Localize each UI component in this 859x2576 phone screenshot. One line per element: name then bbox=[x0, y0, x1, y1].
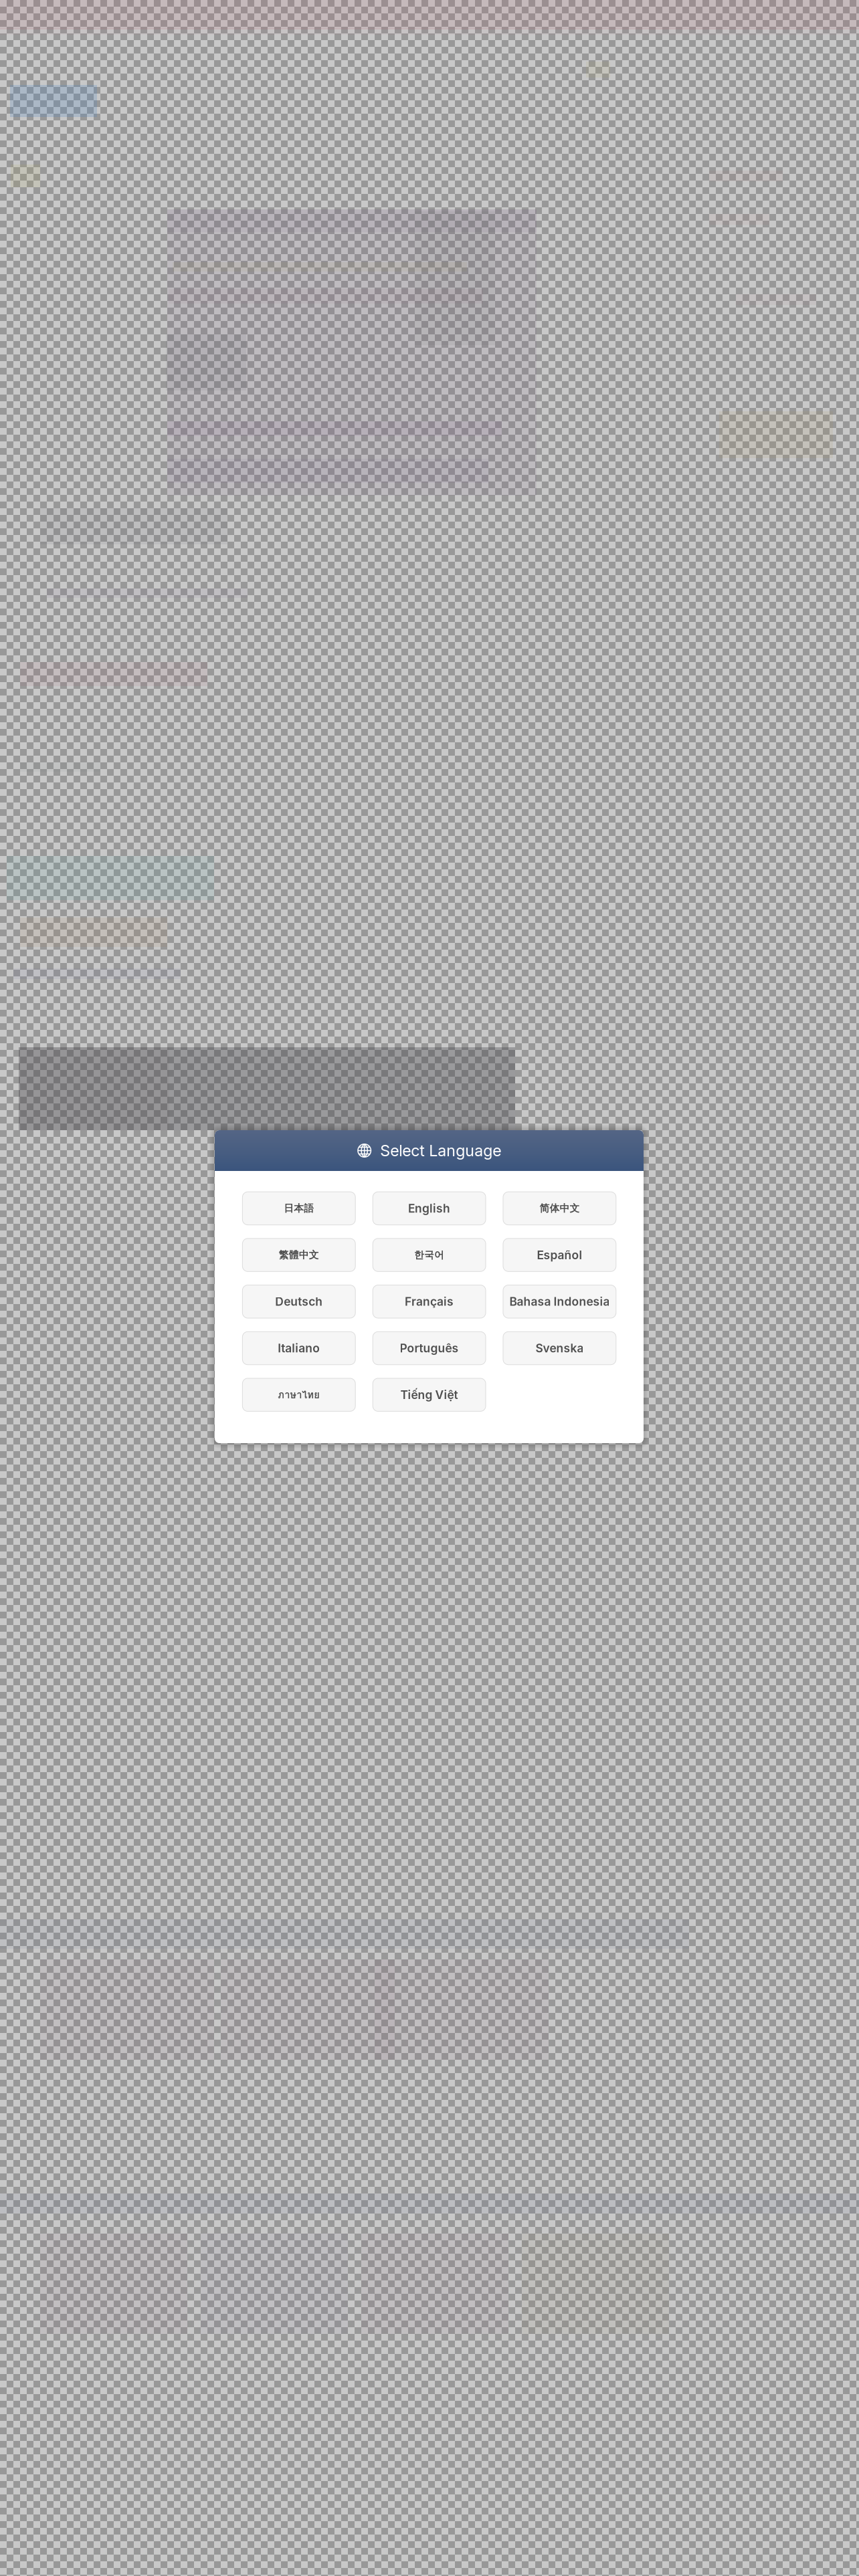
staticText: Tiếng Việt bbox=[400, 1388, 458, 1402]
button[interactable]: Français bbox=[373, 1285, 486, 1318]
button[interactable]: Tiếng Việt bbox=[373, 1378, 486, 1411]
staticText: 日本語 bbox=[284, 1202, 314, 1214]
button[interactable]: Português bbox=[373, 1332, 486, 1365]
staticText: Italiano bbox=[278, 1341, 320, 1355]
staticText: 繁體中文 bbox=[279, 1249, 319, 1261]
button[interactable]: English bbox=[373, 1192, 486, 1225]
staticText: Français bbox=[405, 1295, 454, 1309]
button[interactable]: Bahasa Indonesia bbox=[503, 1285, 616, 1318]
button[interactable]: 简体中文 bbox=[503, 1192, 616, 1225]
button[interactable]: 日本語 bbox=[242, 1192, 355, 1225]
button[interactable]: 한국어 bbox=[373, 1238, 486, 1271]
staticText: 简体中文 bbox=[539, 1202, 580, 1214]
staticText: Bahasa Indonesia bbox=[509, 1295, 610, 1309]
staticText: English bbox=[408, 1201, 450, 1215]
staticText: Português bbox=[400, 1341, 459, 1355]
staticText: ภาษาไทย bbox=[278, 1387, 320, 1402]
button[interactable]: Español bbox=[503, 1238, 616, 1271]
button[interactable]: 繁體中文 bbox=[242, 1238, 355, 1271]
button[interactable]: Svenska bbox=[503, 1332, 616, 1365]
staticText: Deutsch bbox=[275, 1295, 323, 1309]
button[interactable]: Italiano bbox=[242, 1332, 355, 1365]
staticText: Español bbox=[537, 1248, 582, 1262]
staticText: Select Language bbox=[380, 1141, 501, 1160]
staticText: 한국어 bbox=[414, 1249, 444, 1261]
button[interactable]: ภาษาไทย bbox=[242, 1378, 355, 1411]
staticText: Svenska bbox=[535, 1341, 584, 1355]
button[interactable]: Deutsch bbox=[242, 1285, 355, 1318]
